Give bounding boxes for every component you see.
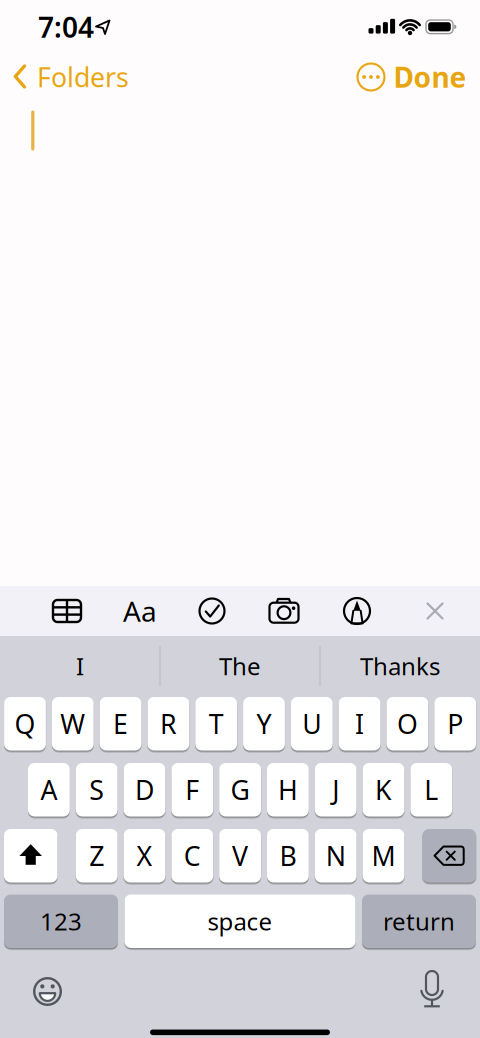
button[interactable]: T bbox=[195, 697, 237, 750]
staticText: 123 bbox=[40, 905, 82, 937]
button[interactable] bbox=[260, 586, 308, 636]
button[interactable]: U bbox=[291, 697, 333, 750]
button[interactable]: J bbox=[315, 763, 357, 816]
staticText: D bbox=[135, 772, 154, 807]
staticText: A bbox=[40, 772, 57, 807]
staticText: I bbox=[355, 706, 364, 741]
button[interactable]: E bbox=[100, 697, 141, 750]
staticText: K bbox=[375, 772, 392, 807]
button[interactable]: Thanks bbox=[325, 642, 475, 690]
staticText: Folders bbox=[37, 59, 129, 95]
button[interactable]: P bbox=[434, 697, 476, 750]
button[interactable]: Folders bbox=[0, 55, 140, 99]
button[interactable]: I bbox=[339, 697, 380, 750]
staticText: R bbox=[160, 706, 177, 741]
button[interactable]: H bbox=[267, 763, 309, 816]
staticText: J bbox=[332, 772, 339, 807]
staticText: C bbox=[184, 838, 201, 873]
button[interactable]: Z bbox=[76, 829, 118, 882]
button[interactable]: Q bbox=[4, 697, 46, 750]
button[interactable]: X bbox=[124, 829, 165, 882]
button[interactable]: B bbox=[267, 829, 309, 882]
button[interactable]: 123 bbox=[4, 894, 118, 948]
staticText: 7:04 bbox=[38, 8, 94, 46]
staticText: return bbox=[383, 905, 455, 937]
button[interactable]: Done bbox=[380, 55, 480, 99]
button[interactable]: K bbox=[363, 763, 404, 816]
staticText: V bbox=[232, 838, 248, 873]
button[interactable]: G bbox=[219, 763, 261, 816]
staticText: E bbox=[113, 706, 128, 741]
button[interactable] bbox=[43, 586, 91, 636]
staticText: I bbox=[76, 650, 84, 682]
staticText: U bbox=[302, 706, 321, 741]
staticText: O bbox=[397, 706, 418, 741]
button[interactable]: W bbox=[52, 697, 94, 750]
staticText: Z bbox=[89, 838, 104, 873]
staticText: H bbox=[278, 772, 298, 807]
button[interactable] bbox=[188, 586, 236, 636]
staticText: Y bbox=[256, 706, 271, 741]
button[interactable]: N bbox=[315, 829, 357, 882]
button[interactable]: L bbox=[410, 763, 452, 816]
staticText: Thanks bbox=[360, 650, 440, 682]
button[interactable]: I bbox=[5, 642, 155, 690]
staticText: space bbox=[207, 905, 272, 937]
button[interactable] bbox=[333, 586, 381, 636]
staticText: F bbox=[185, 772, 199, 807]
button[interactable]: C bbox=[171, 829, 213, 882]
staticText: G bbox=[231, 772, 250, 807]
button[interactable]: Aa bbox=[116, 586, 164, 636]
staticText: Done bbox=[393, 58, 466, 96]
button[interactable]: R bbox=[147, 697, 189, 750]
button[interactable] bbox=[411, 586, 459, 636]
button[interactable]: O bbox=[386, 697, 428, 750]
staticText: X bbox=[136, 838, 152, 873]
staticText: W bbox=[60, 706, 85, 741]
button[interactable] bbox=[23, 967, 71, 1015]
button[interactable]: V bbox=[219, 829, 261, 882]
staticText: M bbox=[371, 838, 395, 873]
staticText: L bbox=[424, 772, 438, 807]
staticText: Aa bbox=[123, 592, 157, 630]
button[interactable]: S bbox=[76, 763, 118, 816]
staticText: The bbox=[219, 650, 261, 682]
button[interactable]: A bbox=[28, 763, 70, 816]
button[interactable]: return bbox=[362, 894, 476, 948]
staticText: B bbox=[279, 838, 296, 873]
button[interactable] bbox=[408, 967, 456, 1015]
button[interactable]: Y bbox=[243, 697, 285, 750]
staticText: Q bbox=[14, 706, 35, 741]
staticText: P bbox=[447, 706, 463, 741]
button[interactable]: F bbox=[171, 763, 213, 816]
button[interactable]: M bbox=[363, 829, 404, 882]
button[interactable]: The bbox=[165, 642, 315, 690]
button[interactable] bbox=[422, 829, 476, 882]
staticText: N bbox=[326, 838, 346, 873]
button[interactable]: D bbox=[124, 763, 165, 816]
button[interactable] bbox=[4, 829, 57, 882]
button[interactable]: space bbox=[124, 894, 355, 948]
button[interactable] bbox=[349, 55, 393, 99]
staticText: S bbox=[89, 772, 104, 807]
staticText: T bbox=[209, 706, 224, 741]
